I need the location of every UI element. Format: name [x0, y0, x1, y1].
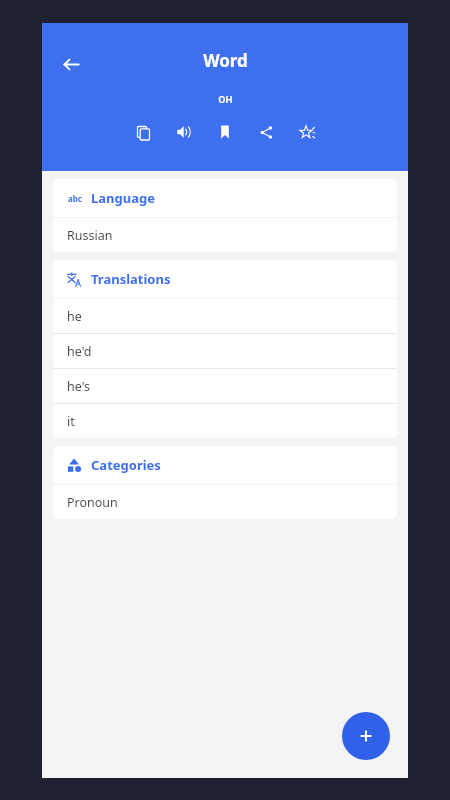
staticText: Word: [203, 49, 248, 72]
button[interactable]: Pronoun: [53, 485, 397, 519]
button[interactable]: Copy: [130, 119, 156, 145]
button[interactable]: Favorite: [294, 119, 320, 145]
button[interactable]: Translations: [53, 260, 397, 298]
staticText: Translations: [91, 270, 171, 288]
staticText: he: [67, 308, 82, 325]
staticText: he'd: [67, 343, 92, 360]
button[interactable]: Add: [342, 712, 390, 760]
staticText: Pronoun: [67, 494, 118, 511]
button[interactable]: Russian: [53, 218, 397, 252]
button[interactable]: abc: [53, 179, 397, 217]
staticText: Language: [91, 189, 155, 207]
button[interactable]: it: [53, 404, 397, 438]
staticText: Russian: [67, 227, 113, 244]
button[interactable]: he'd: [53, 334, 397, 368]
button[interactable]: Share: [253, 119, 279, 145]
button[interactable]: Bookmark: [212, 119, 238, 145]
staticText: Categories: [91, 456, 161, 474]
button[interactable]: Categories: [53, 446, 397, 484]
button[interactable]: he: [53, 299, 397, 333]
staticText: abc: [68, 193, 82, 204]
staticText: it: [67, 413, 75, 430]
button[interactable]: he's: [53, 369, 397, 403]
button[interactable]: Back: [54, 47, 88, 81]
staticText: he's: [67, 378, 91, 395]
staticText: он: [218, 90, 233, 106]
button[interactable]: Pronounce: [171, 119, 197, 145]
